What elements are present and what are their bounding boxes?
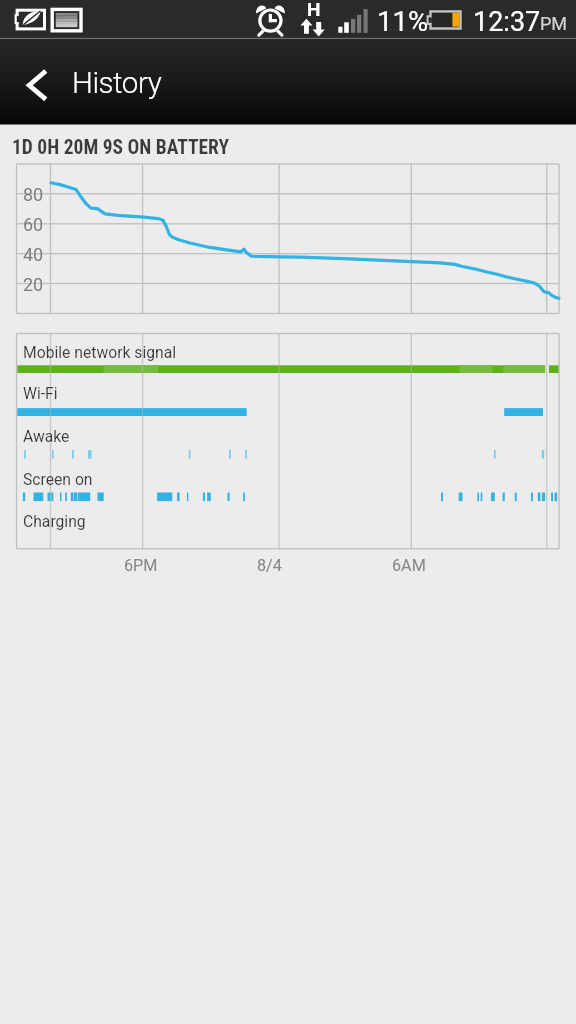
staticText: PM xyxy=(540,13,568,34)
staticText: 40 xyxy=(23,244,44,265)
staticText: 60 xyxy=(23,214,44,235)
staticText: H xyxy=(307,0,321,20)
staticText: Mobile network signal xyxy=(23,343,177,361)
staticText: Charging xyxy=(23,512,86,530)
button[interactable]: Battery usage timeline xyxy=(16,333,560,549)
staticText: Wi-Fi xyxy=(23,384,58,402)
staticText: Awake xyxy=(23,427,70,445)
staticText: 12:37 xyxy=(473,6,541,38)
staticText: Screen on xyxy=(23,470,93,488)
button[interactable]: Back xyxy=(8,46,66,118)
button[interactable]: Navigate up - History xyxy=(0,39,240,125)
staticText: 11% xyxy=(377,5,429,37)
button[interactable]: Battery level chart xyxy=(16,164,560,314)
staticText: 6PM xyxy=(124,556,158,575)
staticText: 80 xyxy=(23,184,44,205)
staticText: History xyxy=(72,66,162,101)
staticText: 20 xyxy=(23,274,44,295)
staticText: 8/4 xyxy=(257,556,282,575)
staticText: 6AM xyxy=(392,556,426,575)
staticText: 1D 0H 20M 9S ON BATTERY xyxy=(12,136,229,159)
